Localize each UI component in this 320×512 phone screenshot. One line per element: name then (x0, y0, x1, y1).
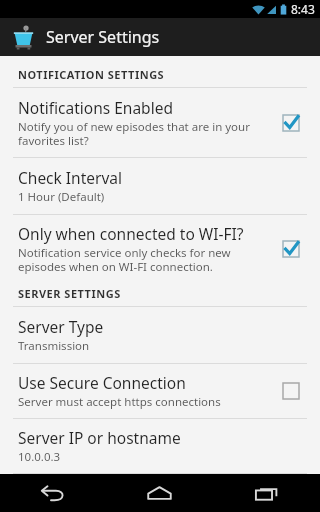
staticText: Transmission (18, 338, 90, 354)
staticText: Only when connected to WI-FI? (18, 223, 244, 244)
button[interactable]: Server IP or hostname (0, 419, 320, 473)
staticText: 1 Hour (Default) (18, 189, 105, 205)
button[interactable]: Notifications Enabled (0, 88, 320, 157)
staticText: Server Settings (46, 26, 160, 48)
button[interactable]: Checked (276, 108, 306, 138)
staticText: 8:43 (291, 1, 315, 17)
button[interactable]: Check Interval (0, 158, 320, 214)
staticText: 10.0.0.3 (18, 449, 61, 465)
button[interactable]: Only when connected to WI-FI? (0, 215, 320, 281)
staticText: Server Type (18, 316, 104, 337)
staticText: Use Secure Connection (18, 372, 186, 393)
staticText: SERVER SETTINGS (18, 286, 121, 301)
button[interactable]: Recent apps (213, 474, 320, 512)
staticText: Notify you of new episodes that are in y… (18, 119, 250, 148)
staticText: Server IP or hostname (18, 427, 181, 448)
staticText: NOTIFICATION SETTINGS (18, 67, 165, 82)
button[interactable]: Back (0, 474, 106, 512)
button[interactable]: Home (106, 474, 213, 512)
button[interactable]: Checked (276, 234, 306, 264)
button[interactable]: Unchecked (276, 376, 306, 406)
staticText: Server must accept https connections (18, 394, 221, 410)
staticText: Notification service only checks for new… (18, 245, 231, 274)
button[interactable]: Use Secure Connection (0, 364, 320, 418)
button[interactable]: Server Type (0, 307, 320, 363)
staticText: Notifications Enabled (18, 97, 173, 118)
staticText: Check Interval (18, 167, 123, 188)
